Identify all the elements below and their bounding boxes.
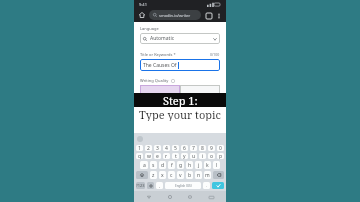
button[interactable]: 0: [217, 145, 224, 151]
button[interactable]: c: [168, 171, 175, 179]
button[interactable]: m: [204, 171, 211, 179]
staticText: 2: [147, 145, 150, 151]
staticText: Automatic: [150, 35, 175, 42]
button[interactable]: f: [168, 161, 175, 169]
button[interactable]: 7: [190, 145, 197, 151]
button[interactable]: [180, 85, 220, 94]
button[interactable]: v: [177, 171, 184, 179]
button[interactable]: The Causes Of: [140, 59, 220, 71]
button[interactable]: x: [159, 171, 166, 179]
staticText: 0: [219, 145, 222, 151]
button[interactable]: Automatic: [140, 33, 220, 44]
button[interactable]: n: [195, 171, 202, 179]
button[interactable]: t: [172, 153, 179, 159]
button[interactable]: s: [150, 161, 157, 169]
button[interactable]: b: [186, 171, 193, 179]
button[interactable]: ,: [156, 182, 163, 189]
button[interactable]: Voice input: [137, 136, 143, 142]
button[interactable]: Back: [144, 192, 154, 202]
staticText: w: [147, 153, 151, 159]
staticText: The Causes Of: [143, 62, 177, 69]
staticText: k: [206, 162, 209, 169]
button[interactable]: More options: [214, 11, 223, 20]
button[interactable]: [140, 85, 180, 94]
button[interactable]: j: [195, 161, 202, 169]
button[interactable]: 5: [172, 145, 179, 151]
staticText: z: [152, 172, 155, 179]
button[interactable]: Home: [137, 10, 147, 20]
button[interactable]: Shift: [136, 171, 148, 179]
button[interactable]: Keyboard: [206, 192, 216, 202]
button[interactable]: .: [203, 182, 210, 189]
staticText: t: [175, 153, 177, 159]
button[interactable]: Space: [165, 182, 201, 189]
staticText: Writing Quality: [140, 78, 169, 83]
staticText: o: [210, 153, 214, 159]
staticText: v: [179, 172, 182, 179]
staticText: Type your topic: [139, 107, 221, 121]
staticText: l: [216, 162, 218, 169]
button[interactable]: r: [163, 153, 170, 159]
button[interactable]: Recents: [185, 192, 195, 202]
button[interactable]: z: [150, 171, 157, 179]
button[interactable]: Enter: [212, 182, 224, 189]
staticText: d: [161, 162, 165, 169]
staticText: 8: [201, 145, 204, 151]
staticText: s: [152, 162, 155, 169]
button[interactable]: d: [159, 161, 166, 169]
staticText: 5: [174, 145, 177, 151]
staticText: Language: [140, 26, 159, 31]
staticText: q: [138, 153, 142, 159]
staticText: a: [143, 162, 146, 169]
staticText: 6: [183, 145, 186, 151]
staticText: u: [192, 153, 196, 159]
button[interactable]: Symbols: [136, 182, 145, 189]
button[interactable]: smodin.io/writer: [149, 10, 201, 20]
button[interactable]: Home: [165, 192, 175, 202]
button[interactable]: 8: [199, 145, 206, 151]
button[interactable]: o: [208, 153, 215, 159]
button[interactable]: g: [177, 161, 184, 169]
button[interactable]: 6: [181, 145, 188, 151]
button[interactable]: p: [217, 153, 224, 159]
staticText: .: [206, 183, 208, 188]
button[interactable]: w: [145, 153, 152, 159]
staticText: 4: [165, 145, 168, 151]
staticText: r: [165, 153, 168, 159]
staticText: 1: [138, 145, 141, 151]
button[interactable]: q: [136, 153, 143, 159]
staticText: 0/100: [210, 52, 220, 57]
button[interactable]: k: [204, 161, 211, 169]
staticText: ?123: [136, 183, 145, 188]
staticText: 9: [210, 145, 213, 151]
button[interactable]: 1: [136, 145, 143, 151]
button[interactable]: i: [199, 153, 206, 159]
staticText: y: [183, 153, 186, 159]
staticText: Title or Keywords *: [140, 52, 176, 57]
button[interactable]: u: [190, 153, 197, 159]
staticText: n: [197, 172, 201, 179]
staticText: g: [179, 162, 183, 169]
staticText: x: [161, 172, 164, 179]
button[interactable]: 9: [208, 145, 215, 151]
staticText: b: [188, 172, 192, 179]
button[interactable]: h: [186, 161, 193, 169]
button[interactable]: Tabs: [204, 11, 213, 20]
button[interactable]: l: [213, 161, 220, 169]
button[interactable]: 2: [145, 145, 152, 151]
button[interactable]: y: [181, 153, 188, 159]
button[interactable]: 4: [163, 145, 170, 151]
button[interactable]: e: [154, 153, 161, 159]
button[interactable]: Backspace: [213, 171, 224, 179]
staticText: i: [202, 153, 204, 159]
button[interactable]: a: [140, 161, 148, 169]
staticText: h: [188, 162, 192, 169]
staticText: Step 1:: [163, 93, 198, 107]
staticText: 3: [156, 145, 159, 151]
button[interactable]: Settings: [147, 182, 154, 189]
staticText: p: [219, 153, 223, 159]
button[interactable]: 3: [154, 145, 161, 151]
staticText: 7: [192, 145, 195, 151]
staticText: e: [156, 153, 159, 159]
staticText: f: [171, 162, 173, 169]
